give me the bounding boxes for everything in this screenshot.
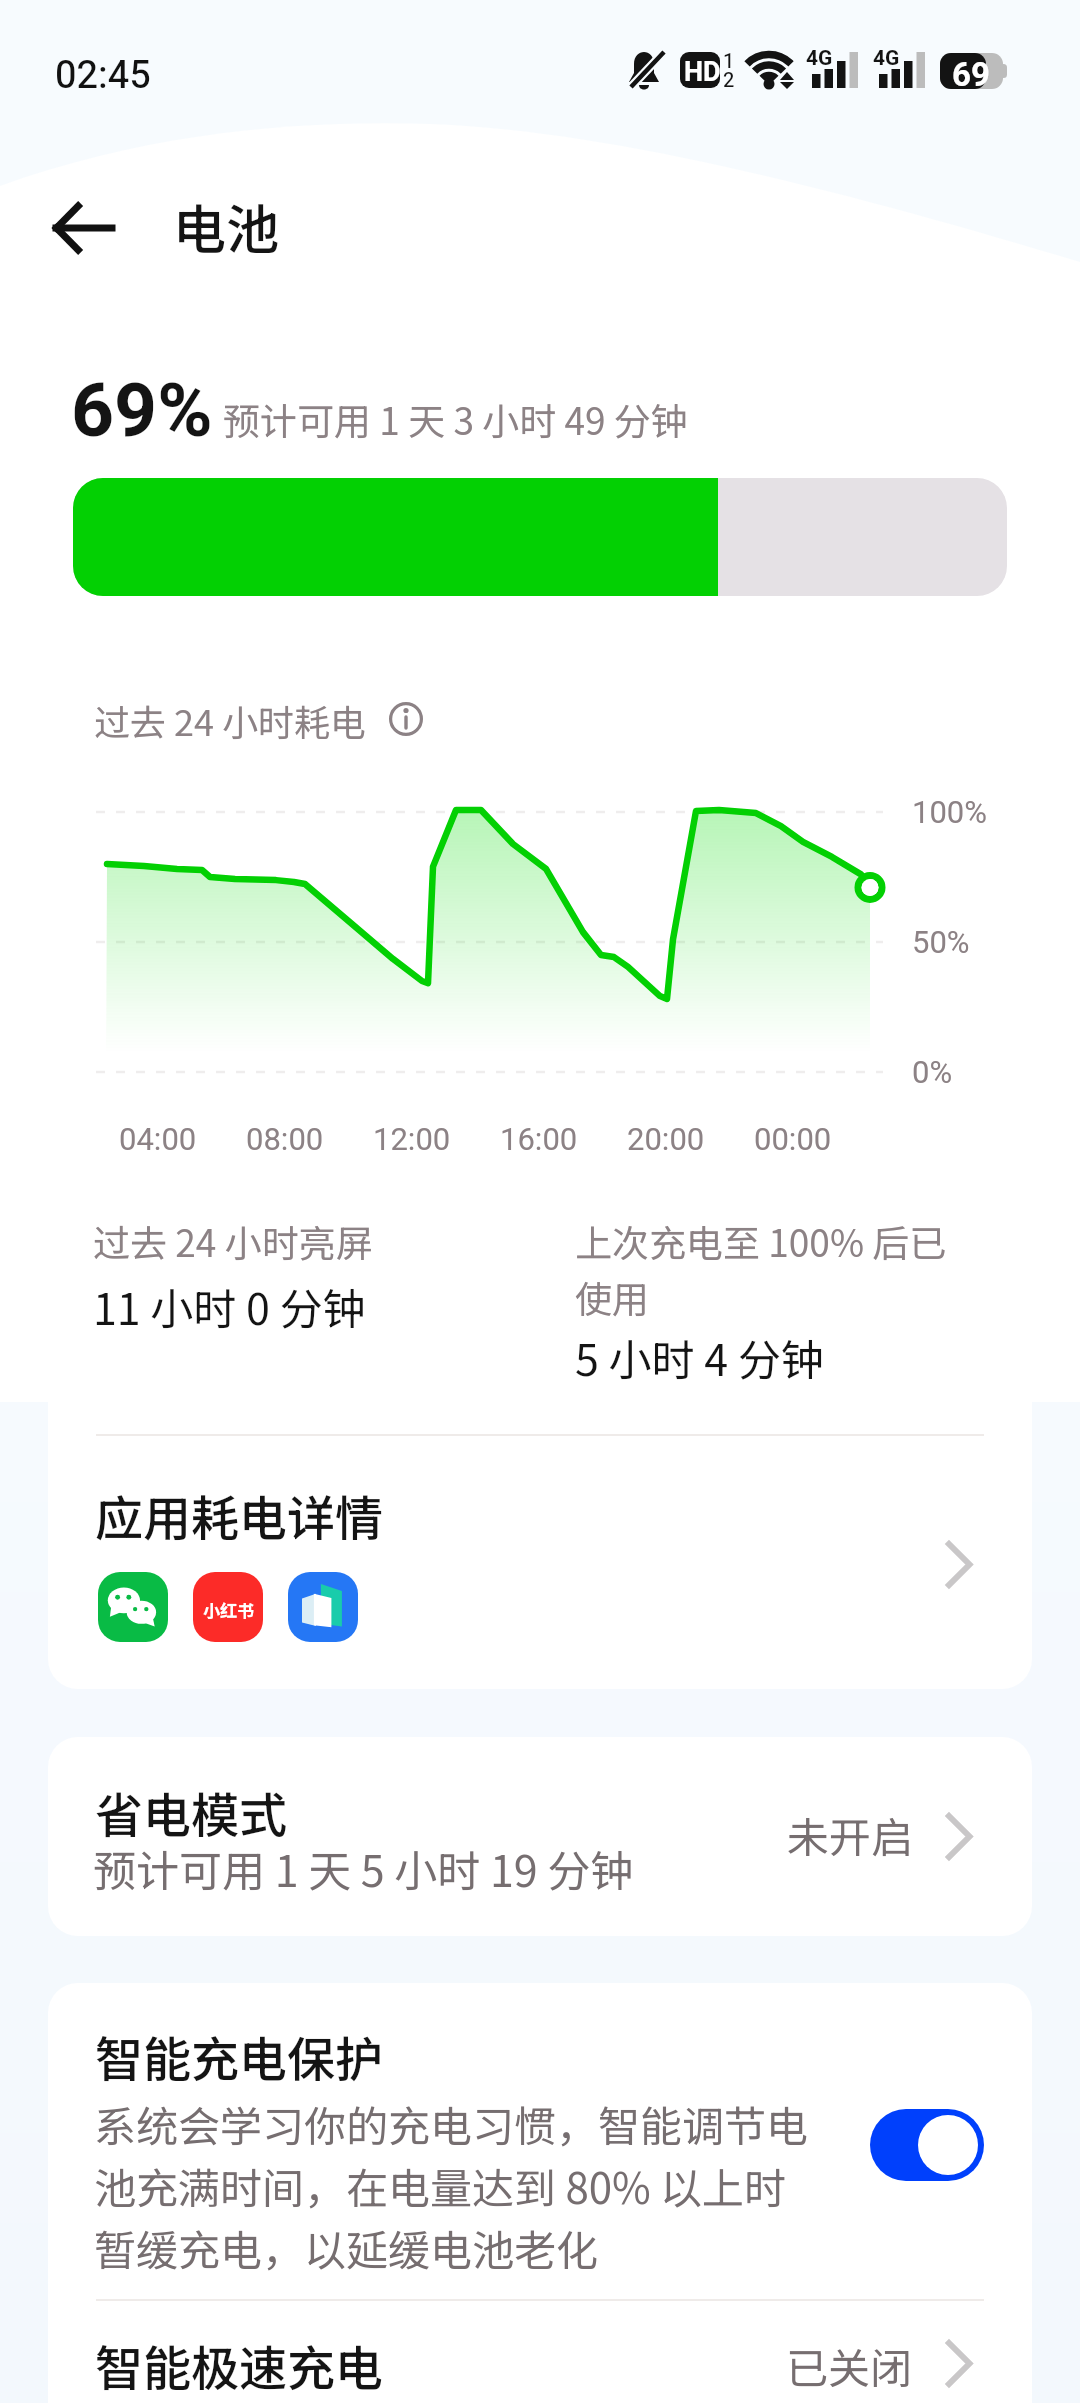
staticText: 50% [912,921,970,967]
staticText: 1 [723,47,735,76]
staticText: 100% [912,791,987,837]
staticText: 12:00 [373,1118,451,1164]
staticText: 系统会学习你的充电习惯，智能调节电池充满时间，在电量达到 80% 以上时暂缓充电… [94,2093,822,2278]
staticText: 02:45 [55,48,151,104]
staticText: 11 小时 0 分钟 [93,1275,366,1337]
staticText: 电池 [173,188,279,265]
button[interactable]: 智能充电保护 [870,2109,984,2181]
staticText: 5 小时 4 分钟 [575,1326,824,1388]
button[interactable]: Back [36,180,132,276]
staticText: 69% [71,357,213,467]
staticText: 未开启 [787,1804,914,1865]
button[interactable]: 智能极速充电 [48,2301,1032,2403]
button[interactable]: 应用耗电详情 [48,1436,1032,1689]
button[interactable]: 省电模式 [48,1737,1032,1936]
staticText: 过去 24 小时亮屏 [93,1214,373,1268]
staticText: 省电模式 [95,1777,288,1847]
staticText: 4G [806,43,833,74]
staticText: 0% [912,1051,953,1097]
staticText: 应用耗电详情 [95,1480,384,1550]
staticText: 智能充电保护 [95,2021,384,2091]
staticText: 04:00 [119,1118,197,1164]
staticText: 08:00 [246,1118,324,1164]
staticText: 上次充电至 100% 后已使用 [575,1214,947,1324]
staticText: 小红书 [203,1597,254,1622]
staticText: 69 [952,51,990,99]
staticText: 过去 24 小时耗电 [94,694,367,746]
staticText: 16:00 [500,1118,578,1164]
staticText: 智能极速充电 [95,2330,384,2400]
staticText: 4G [873,43,900,74]
staticText: 预计可用 1 天 3 小时 49 分钟 [223,392,688,446]
other: Info [389,702,423,736]
staticText: 00:00 [754,1118,832,1164]
staticText: 已关闭 [786,2335,913,2396]
staticText: 预计可用 1 天 5 小时 19 分钟 [93,1837,634,1899]
staticText: 2 [723,66,735,95]
staticText: 20:00 [627,1118,705,1164]
staticText: HD [684,53,721,93]
